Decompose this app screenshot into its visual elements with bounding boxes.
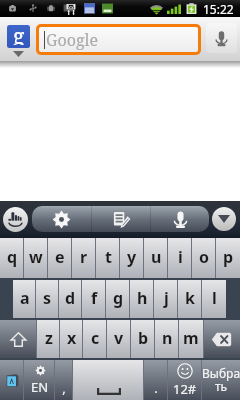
button[interactable]: f (82, 280, 106, 318)
staticText: s (43, 287, 52, 309)
button[interactable]: s (36, 280, 59, 318)
button[interactable]: u (144, 238, 168, 278)
staticText: n (162, 327, 173, 349)
staticText: Google (46, 29, 99, 51)
staticText: f (91, 287, 98, 309)
button[interactable]: 12# (168, 360, 202, 400)
button[interactable]: y (120, 238, 144, 278)
staticText: g (13, 25, 25, 45)
button[interactable]: p (216, 238, 240, 278)
staticText: EN (31, 378, 49, 396)
staticText: i (178, 246, 183, 268)
button[interactable]: . (144, 360, 168, 400)
button[interactable]: Voice search (206, 23, 237, 53)
button[interactable]: e (48, 238, 72, 278)
button[interactable]: d (59, 280, 82, 318)
staticText: d (65, 287, 76, 309)
button[interactable]: Settings (32, 206, 91, 232)
button[interactable]: Switch language (0, 360, 24, 400)
staticText: u (151, 246, 162, 268)
staticText: l (212, 287, 217, 309)
button[interactable]: Shift (0, 320, 37, 358)
staticText: q (7, 246, 18, 268)
staticText: h (137, 287, 148, 309)
staticText: t (105, 246, 112, 268)
button[interactable]: n (155, 320, 179, 358)
button[interactable]: Edit text (92, 206, 150, 232)
button[interactable]: Выбрать (202, 360, 240, 400)
button[interactable]: EN (24, 360, 55, 400)
button[interactable]: v (107, 320, 131, 358)
staticText: 12# (173, 380, 197, 398)
staticText: w (29, 246, 43, 268)
button[interactable]: i (168, 238, 192, 278)
button[interactable]: Voice input (151, 206, 209, 232)
staticText: . (154, 379, 158, 397)
button[interactable]: , (55, 360, 73, 400)
button[interactable]: c (83, 320, 107, 358)
button[interactable]: w (24, 238, 48, 278)
button[interactable]: r (72, 238, 96, 278)
button[interactable]: Space (73, 360, 144, 400)
staticText: a (20, 287, 30, 309)
button[interactable]: Google (39, 27, 198, 52)
button[interactable]: l (202, 280, 226, 318)
button[interactable]: j (154, 280, 178, 318)
staticText: y (127, 246, 137, 268)
staticText: r (80, 246, 88, 268)
button[interactable]: q (0, 238, 24, 278)
button[interactable]: o (192, 238, 216, 278)
staticText: Выбрать (202, 365, 240, 395)
button[interactable]: b (131, 320, 155, 358)
staticText: g (113, 287, 124, 309)
button[interactable]: t (96, 238, 120, 278)
staticText: , (62, 379, 66, 397)
staticText: p (223, 246, 234, 268)
staticText: v (114, 327, 124, 349)
button[interactable]: h (130, 280, 154, 318)
button[interactable]: k (178, 280, 202, 318)
staticText: k (185, 287, 195, 309)
button[interactable]: x (60, 320, 83, 358)
staticText: j (164, 287, 169, 309)
staticText: c (91, 327, 100, 349)
button[interactable]: a (13, 280, 36, 318)
staticText: z (45, 327, 53, 349)
button[interactable]: Swype (3, 207, 28, 232)
button[interactable]: g (106, 280, 130, 318)
staticText: x (67, 327, 77, 349)
staticText: e (55, 246, 65, 268)
staticText: b (138, 327, 149, 349)
button[interactable]: Backspace (203, 320, 240, 358)
button[interactable]: Hide keyboard (212, 207, 236, 231)
button[interactable]: Google search provider (7, 25, 30, 48)
button[interactable]: m (179, 320, 203, 358)
staticText: 15:22 (203, 1, 234, 17)
staticText: m (183, 327, 199, 349)
button[interactable]: z (37, 320, 60, 358)
staticText: o (199, 246, 210, 268)
